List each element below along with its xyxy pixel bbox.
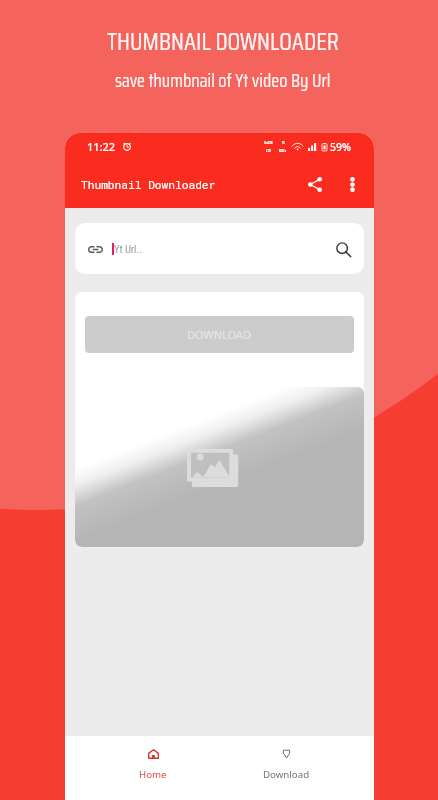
- button[interactable]: DOWNLOAD: [85, 316, 354, 353]
- staticText: VoLTE: [264, 139, 273, 146]
- staticText: DOWNLOAD: [187, 327, 252, 342]
- staticText: Download: [263, 768, 310, 781]
- staticText: Yt Url..: [114, 243, 142, 255]
- staticText: 11: [282, 139, 285, 146]
- staticText: save thumbnail of Yt video By Url: [115, 66, 331, 95]
- staticText: Thumbnail Downloader: [81, 177, 216, 192]
- button[interactable]: Search: [326, 232, 360, 266]
- button[interactable]: Share: [301, 167, 335, 201]
- button[interactable]: Home: [125, 752, 181, 784]
- button[interactable]: Yt Url..: [75, 223, 364, 274]
- staticText: Home: [139, 768, 167, 781]
- button[interactable]: More options: [335, 167, 369, 201]
- staticText: LTE: [266, 147, 272, 154]
- button[interactable]: Download: [249, 752, 324, 784]
- staticText: 59%: [330, 140, 351, 154]
- staticText: 11:22: [87, 139, 116, 154]
- staticText: KB/s: [279, 147, 287, 154]
- staticText: THUMBNAIL DOWNLOADER: [107, 22, 339, 61]
